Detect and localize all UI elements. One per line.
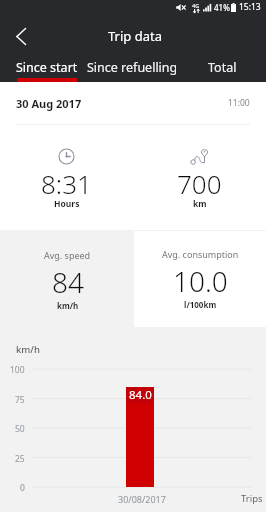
staticText: 0 — [20, 482, 25, 494]
staticText: Since refuelling — [87, 59, 176, 76]
staticText: 4G — [192, 2, 200, 9]
staticText: km/h — [57, 300, 79, 311]
staticText: Trip data — [108, 27, 162, 45]
staticText: 30/08/2017 — [118, 493, 166, 505]
button[interactable]: Back — [7, 22, 35, 50]
staticText: 75 — [15, 394, 25, 406]
button[interactable]: Since refuelling — [87, 58, 176, 82]
staticText: 15:13 — [239, 1, 261, 13]
staticText: Avg. speed — [44, 249, 91, 261]
staticText: Since start — [16, 59, 78, 76]
staticText: 41% — [214, 2, 230, 13]
button[interactable]: Since start — [0, 58, 93, 82]
staticText: 30 Aug 2017 — [16, 96, 82, 111]
staticText: 700 — [177, 166, 222, 201]
staticText: Trips — [241, 492, 263, 505]
staticText: 50 — [15, 423, 25, 435]
staticText: km/h — [16, 343, 40, 356]
button[interactable]: Total — [196, 58, 249, 82]
staticText: 10.0 — [173, 262, 228, 300]
staticText: 100 — [10, 364, 25, 376]
button[interactable]: Avg. consumption — [134, 231, 266, 327]
staticText: 8:31 — [41, 166, 92, 201]
staticText: Hours — [54, 198, 80, 210]
staticText: 11:00 — [228, 97, 250, 109]
button[interactable]: Avg. speed — [0, 230, 134, 330]
staticText: 84 — [52, 263, 84, 301]
staticText: Total — [208, 59, 237, 76]
staticText: 84.0 — [129, 387, 152, 403]
staticText: 25 — [15, 453, 25, 465]
staticText: l/100km — [184, 299, 217, 310]
staticText: km — [193, 198, 207, 210]
staticText: Avg. consumption — [162, 248, 239, 260]
